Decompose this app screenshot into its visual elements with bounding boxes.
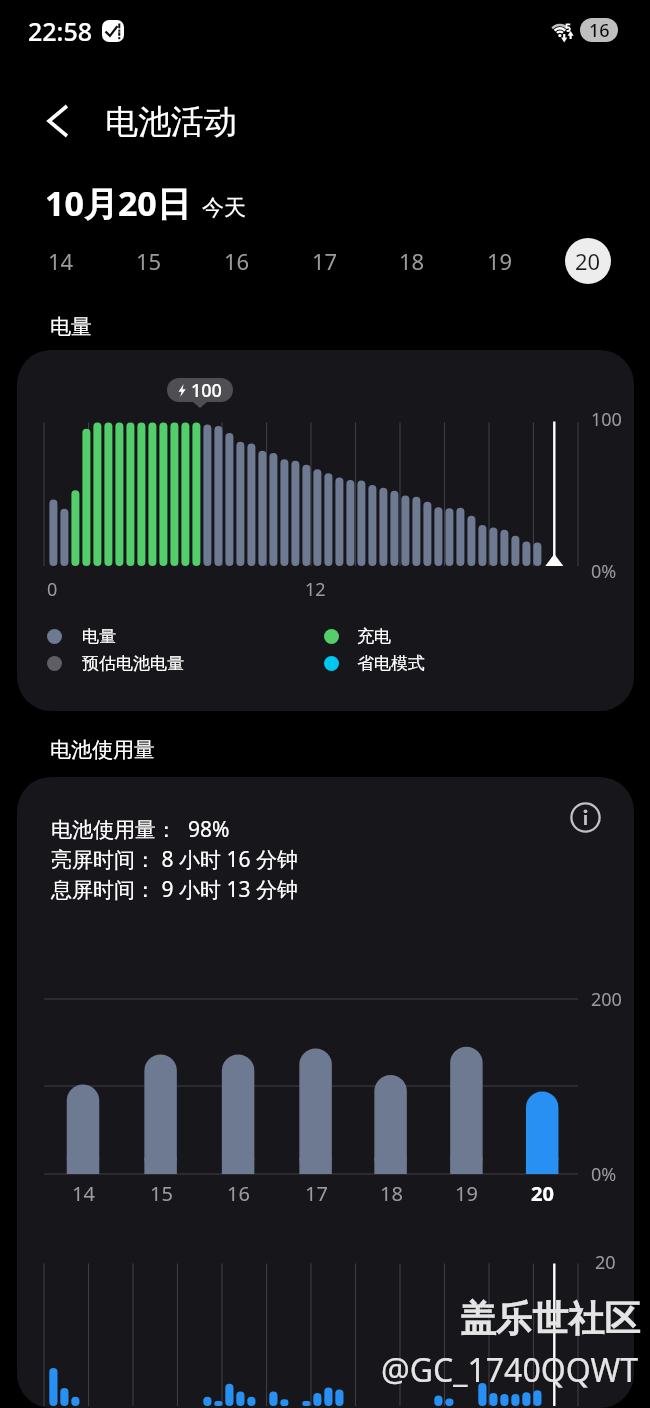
staticText: 18 — [399, 246, 425, 276]
staticText: 10月20日 — [45, 180, 191, 226]
staticText: 19 — [487, 246, 513, 276]
staticText: @GC_1740QQWT — [381, 1348, 638, 1392]
staticText: 17 — [312, 246, 338, 276]
staticText: 12 — [305, 577, 326, 602]
staticText: 15 — [150, 1180, 173, 1207]
button[interactable]: 15 — [126, 238, 172, 284]
staticText: 20 — [575, 246, 601, 276]
staticText: 100 — [191, 378, 222, 402]
staticText: 省电模式 — [357, 653, 425, 674]
staticText: 100 — [591, 407, 622, 432]
staticText: 20 — [531, 1180, 554, 1207]
staticText: 电池活动 — [105, 101, 237, 143]
staticText: 20 — [595, 1250, 616, 1275]
staticText: 17 — [305, 1180, 328, 1207]
staticText: 14 — [48, 246, 74, 276]
staticText: 19 — [455, 1180, 478, 1207]
button[interactable]: Info — [563, 795, 607, 839]
button[interactable]: 20 — [565, 238, 611, 284]
staticText: 预估电池电量 — [82, 653, 184, 674]
staticText: 电池使用量： 98% — [51, 815, 230, 844]
staticText: 200 — [591, 987, 622, 1012]
staticText: 盖乐世社区 — [460, 1296, 640, 1341]
staticText: 22:58 — [28, 14, 93, 48]
staticText: 电量 — [50, 314, 92, 340]
staticText: 今天 — [202, 194, 246, 222]
staticText: 16 — [224, 246, 250, 276]
staticText: 14 — [72, 1180, 95, 1207]
button[interactable]: 14 — [38, 238, 84, 284]
button[interactable]: Back — [28, 91, 88, 151]
button[interactable]: 16 — [214, 238, 260, 284]
staticText: 15 — [136, 246, 162, 276]
staticText: 0 — [47, 577, 58, 602]
staticText: 电量 — [82, 626, 116, 647]
button[interactable]: 17 — [302, 238, 348, 284]
button[interactable]: 18 — [389, 238, 435, 284]
staticText: 16 — [589, 18, 610, 42]
staticText: 18 — [380, 1180, 403, 1207]
staticText: 0% — [591, 559, 617, 584]
staticText: 息屏时间： 9 小时 13 分钟 — [51, 875, 298, 904]
staticText: 电池使用量 — [50, 737, 155, 763]
staticText: 0% — [591, 1162, 617, 1187]
staticText: 充电 — [357, 626, 391, 647]
staticText: 亮屏时间： 8 小时 16 分钟 — [51, 845, 298, 874]
button[interactable]: 19 — [477, 238, 523, 284]
staticText: 16 — [227, 1180, 250, 1207]
